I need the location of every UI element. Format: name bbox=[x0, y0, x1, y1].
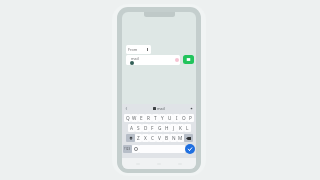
button[interactable]: Shift bbox=[126, 134, 135, 142]
button[interactable]: B bbox=[163, 134, 170, 142]
button[interactable]: V bbox=[156, 134, 163, 142]
staticText: W bbox=[132, 115, 137, 121]
button[interactable]: E bbox=[138, 114, 145, 122]
button[interactable]: Send bbox=[185, 144, 195, 154]
button[interactable]: S bbox=[135, 124, 142, 132]
staticText: H bbox=[165, 125, 169, 131]
staticText: J bbox=[173, 125, 175, 131]
staticText: S bbox=[137, 125, 140, 131]
button[interactable]: Keyboard settings bbox=[189, 106, 194, 111]
staticText: N bbox=[172, 135, 176, 141]
button[interactable]: X bbox=[142, 134, 149, 142]
staticText: mail bbox=[157, 106, 165, 111]
staticText: Z bbox=[137, 135, 140, 141]
button[interactable]: K bbox=[177, 124, 184, 132]
button[interactable]: R bbox=[145, 114, 152, 122]
staticText: F bbox=[151, 125, 154, 131]
staticText: From bbox=[128, 47, 138, 52]
button[interactable]: Previous suggestions bbox=[124, 106, 129, 111]
staticText: Q bbox=[126, 115, 130, 121]
staticText: M bbox=[178, 135, 183, 141]
staticText: X bbox=[144, 135, 147, 141]
button[interactable]: From bbox=[126, 45, 151, 54]
button[interactable]: Emoji bbox=[132, 145, 139, 153]
button[interactable]: F bbox=[149, 124, 156, 132]
staticText: C bbox=[151, 135, 154, 141]
button[interactable]: Backspace bbox=[184, 134, 193, 142]
staticText: K bbox=[179, 125, 182, 131]
button[interactable]: Z bbox=[135, 134, 142, 142]
button[interactable]: A bbox=[128, 124, 135, 132]
staticText: Y bbox=[161, 115, 164, 121]
button[interactable]: M bbox=[177, 134, 184, 142]
button[interactable]: W bbox=[131, 114, 138, 122]
staticText: U bbox=[168, 115, 172, 121]
staticText: O bbox=[182, 115, 186, 121]
button[interactable]: D bbox=[142, 124, 149, 132]
button[interactable]: N bbox=[170, 134, 177, 142]
button[interactable]: H bbox=[163, 124, 170, 132]
staticText: D bbox=[144, 125, 148, 131]
button[interactable]: Y bbox=[159, 114, 166, 122]
button[interactable]: T bbox=[152, 114, 159, 122]
staticText: P bbox=[189, 115, 192, 121]
button[interactable]: U bbox=[166, 114, 173, 122]
staticText: E bbox=[140, 115, 143, 121]
staticText: mail bbox=[131, 56, 139, 61]
button[interactable]: I bbox=[173, 114, 180, 122]
button[interactable]: Q bbox=[124, 114, 131, 122]
staticText: A bbox=[130, 125, 133, 131]
staticText: V bbox=[158, 135, 161, 141]
staticText: I bbox=[176, 115, 178, 121]
button[interactable]: G bbox=[156, 124, 163, 132]
staticText: ?123 bbox=[124, 147, 131, 151]
staticText: L bbox=[186, 125, 189, 131]
button[interactable]: J bbox=[170, 124, 177, 132]
staticText: R bbox=[147, 115, 150, 121]
staticText: T bbox=[154, 115, 157, 121]
staticText: B bbox=[165, 135, 169, 141]
button[interactable]: Send bbox=[183, 55, 194, 64]
button[interactable]: P bbox=[187, 114, 194, 122]
button[interactable]: L bbox=[184, 124, 191, 132]
button[interactable]: ?123 bbox=[123, 145, 132, 153]
staticText: G bbox=[158, 125, 162, 131]
button[interactable]: C bbox=[149, 134, 156, 142]
button[interactable]: O bbox=[180, 114, 187, 122]
button[interactable]: mail bbox=[126, 55, 180, 65]
